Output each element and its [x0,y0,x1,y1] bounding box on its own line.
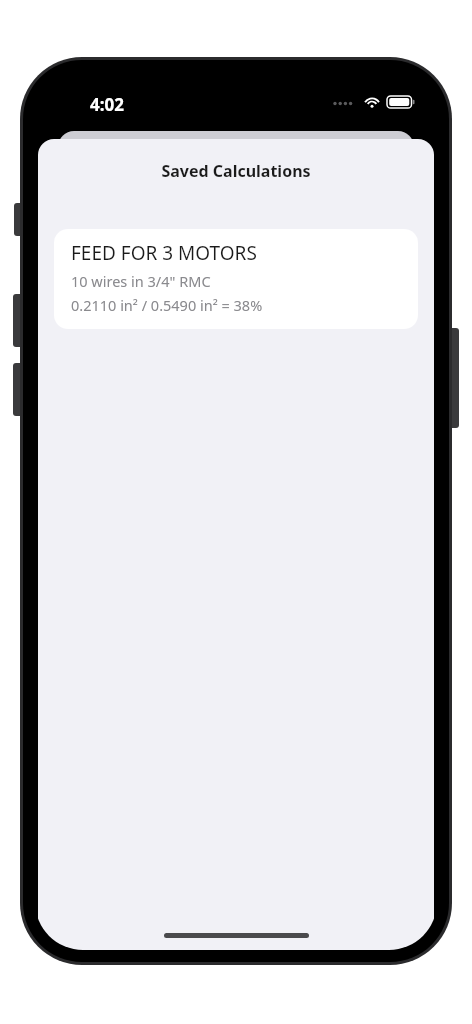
button[interactable]: FEED FOR 3 MOTORS [54,229,418,329]
staticText: 0.2110 in² / 0.5490 in² = 38% [71,295,263,315]
staticText: FEED FOR 3 MOTORS [71,240,257,266]
staticText: 4:02 [90,93,124,116]
other: Wi-Fi [363,95,381,109]
other: Battery [387,95,415,109]
staticText: 10 wires in 3/4" RMC [71,271,211,291]
staticText: Saved Calculations [161,160,311,182]
other: Cellular signal [333,96,357,108]
